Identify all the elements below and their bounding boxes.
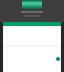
button[interactable]: Add bbox=[56, 57, 60, 61]
